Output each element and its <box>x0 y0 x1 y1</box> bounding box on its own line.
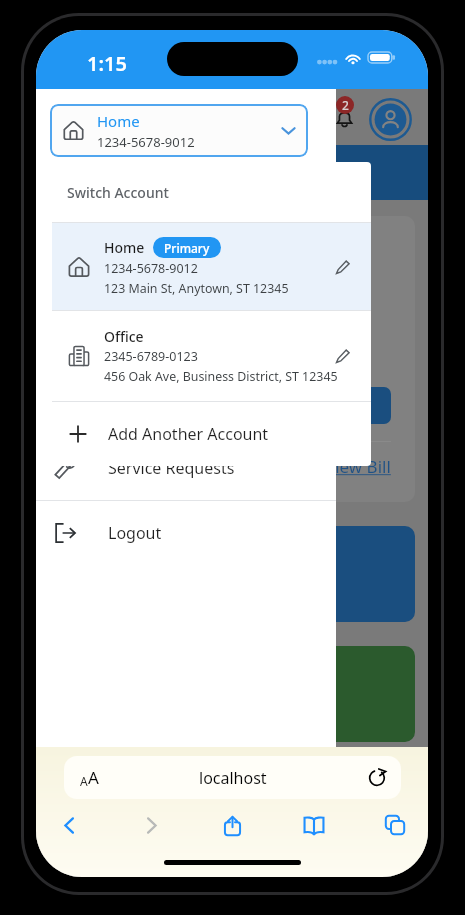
staticText: 2345-6789-0123 <box>104 348 198 365</box>
button[interactable]: Share <box>213 806 251 844</box>
button[interactable]: View Bill <box>325 455 391 478</box>
staticText: A <box>88 766 99 789</box>
staticText: 123 Main St, Anytown, ST 12345 <box>104 280 289 297</box>
button[interactable]: Home <box>52 223 371 310</box>
staticText: 456 Oak Ave, Business District, ST 12345 <box>104 368 338 385</box>
staticText: 2 <box>342 97 349 113</box>
staticText: Home <box>97 111 140 131</box>
other: Reload <box>368 769 386 787</box>
staticText: localhost <box>199 767 267 789</box>
button[interactable]: Forward <box>132 806 170 844</box>
staticText: Switch Account <box>67 183 169 202</box>
button[interactable]: Edit account <box>330 339 356 373</box>
button[interactable]: A <box>64 756 401 799</box>
staticText: Home <box>104 238 145 257</box>
button[interactable]: Tabs <box>376 806 414 844</box>
button[interactable]: Office <box>52 311 371 401</box>
button[interactable]: Service Requests <box>36 436 336 500</box>
staticText: Logout <box>108 522 162 544</box>
staticText: 1234-5678-9012 <box>104 260 198 277</box>
button[interactable]: Profile <box>368 97 412 141</box>
staticText: 1234-5678-9012 <box>97 133 195 151</box>
staticText: Service Requests <box>108 457 235 479</box>
staticText: A <box>80 773 88 789</box>
staticText: Primary <box>164 240 210 256</box>
staticText: Office <box>104 327 144 346</box>
staticText: 1:15 <box>87 50 127 77</box>
button[interactable]: Home <box>50 104 308 157</box>
button[interactable]: Back <box>50 806 88 844</box>
button[interactable]: Add Another Account <box>52 402 371 466</box>
button[interactable]: Logout <box>36 501 336 565</box>
button[interactable]: Edit account <box>330 250 356 284</box>
button[interactable]: Bookmarks <box>295 806 333 844</box>
staticText: Add Another Account <box>108 423 269 445</box>
button[interactable]: Notifications <box>328 102 360 134</box>
button[interactable]: Pay Bill <box>271 387 391 424</box>
